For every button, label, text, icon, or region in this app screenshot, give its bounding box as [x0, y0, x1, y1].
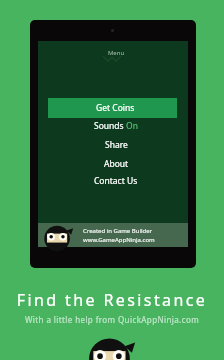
- staticText: Menu: [41, 49, 191, 57]
- staticText: On: [126, 120, 138, 132]
- staticText: About: [104, 158, 129, 170]
- staticText: Share: [105, 139, 128, 151]
- button[interactable]: Get Coins: [48, 98, 177, 118]
- staticText: Find the Resistance: [0, 289, 224, 311]
- staticText: Sounds: [94, 120, 126, 132]
- staticText: Created in Game Builder: [83, 227, 153, 235]
- staticText: Get Coins: [96, 102, 135, 114]
- button[interactable]: Share: [41, 136, 191, 154]
- staticText: With a little help from QuickAppNinja.co…: [0, 314, 224, 325]
- button[interactable]: Contact Us: [41, 172, 191, 190]
- staticText: www.GameAppNinja.com: [83, 236, 155, 244]
- button[interactable]: Sounds: [41, 117, 191, 135]
- button[interactable]: About: [41, 155, 191, 173]
- staticText: Contact Us: [94, 175, 138, 187]
- button[interactable]: Created in Game Builder: [38, 223, 188, 247]
